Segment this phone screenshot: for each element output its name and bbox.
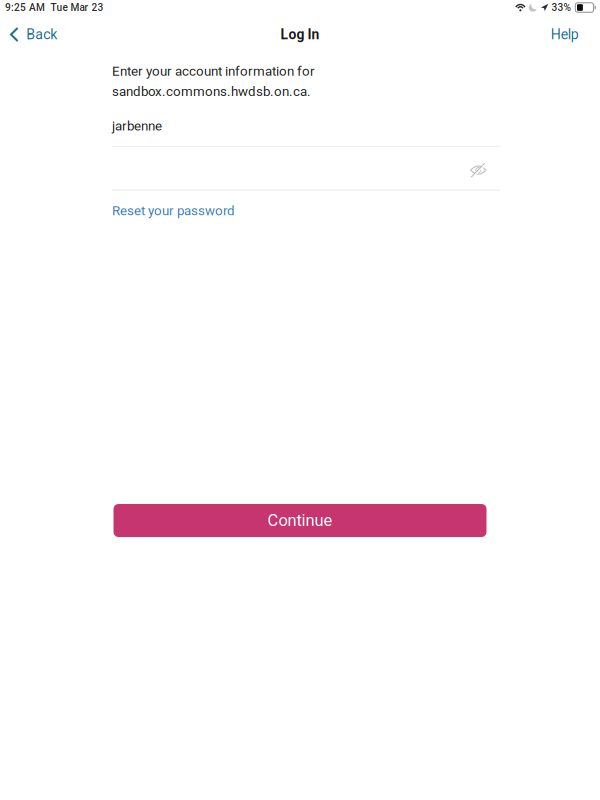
- button[interactable]: Username: [112, 99, 500, 147]
- button[interactable]: Back: [0, 21, 69, 48]
- staticText: Continue: [267, 511, 332, 530]
- staticText: 9:25 AM: [5, 2, 45, 13]
- staticText: 33%: [551, 2, 570, 13]
- button[interactable]: Reset your password: [112, 199, 235, 222]
- staticText: jarbenne: [112, 118, 162, 134]
- staticText: Reset your password: [112, 203, 235, 218]
- staticText: Tue Mar 23: [50, 2, 103, 13]
- button[interactable]: Password: [112, 147, 500, 191]
- staticText: sandbox.commons.hwdsb.on.ca.: [112, 84, 311, 99]
- staticText: Log In: [280, 26, 319, 43]
- staticText: Help: [551, 26, 579, 43]
- button[interactable]: Continue: [113, 504, 486, 537]
- staticText: Enter your account information for: [112, 63, 315, 79]
- button[interactable]: Help: [539, 21, 600, 48]
- staticText: Back: [26, 26, 57, 43]
- button[interactable]: Show password: [470, 148, 500, 190]
